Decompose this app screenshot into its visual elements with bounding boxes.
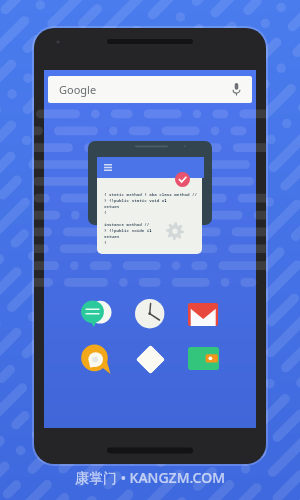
staticText: } {}public voide i1 xyxy=(104,228,152,234)
staticText: { static method { aka class method // xyxy=(104,192,197,198)
button[interactable]: Messages xyxy=(80,298,112,329)
button[interactable]: Done xyxy=(175,172,190,187)
button[interactable]: Clock xyxy=(135,299,164,328)
staticText: 康掌门 • KANGZM.COM xyxy=(75,468,226,487)
staticText: return xyxy=(104,234,120,240)
staticText: { xyxy=(104,240,107,246)
other: Voice search xyxy=(232,83,241,96)
button[interactable]: Allo xyxy=(80,343,111,374)
staticText: instance method // xyxy=(104,222,150,228)
staticText: Google xyxy=(59,82,97,97)
button[interactable]: Wallet xyxy=(188,347,219,370)
button[interactable]: Google xyxy=(48,76,252,103)
button[interactable]: Gmail xyxy=(188,303,218,326)
staticText: } {}public static void x1 xyxy=(104,198,167,204)
button[interactable]: Files xyxy=(135,344,166,375)
other: Menu xyxy=(104,164,112,171)
staticText: return xyxy=(104,204,120,210)
staticText: { xyxy=(104,210,107,216)
